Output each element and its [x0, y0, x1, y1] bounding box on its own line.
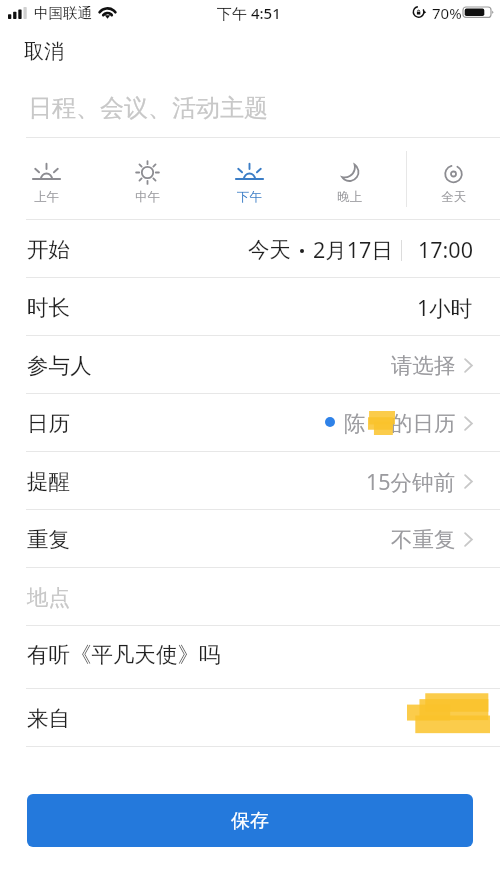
staticText: 下午 4:51 — [217, 3, 281, 23]
staticText: 晚上 — [337, 189, 362, 205]
staticText: 保存 — [231, 809, 269, 833]
staticText: 不重复 — [391, 526, 456, 553]
staticText: 陈 — [344, 410, 366, 437]
button[interactable]: 日历 — [0, 394, 500, 452]
staticText: 中国联通 — [34, 4, 92, 22]
button[interactable]: 中午 — [97, 138, 197, 220]
staticText: 参与人 — [27, 352, 92, 379]
button[interactable]: 地点 — [0, 568, 500, 626]
staticText: 日程、会议、活动主题 — [28, 93, 268, 123]
button[interactable]: 晚上 — [299, 138, 399, 220]
button[interactable]: 来自 — [0, 689, 500, 747]
button[interactable]: 下午 — [199, 138, 299, 220]
button[interactable]: 有听《平凡天使》吗 — [0, 626, 500, 689]
button[interactable]: 全天 — [403, 138, 500, 220]
button[interactable]: 日程、会议、活动主题 — [0, 75, 500, 137]
staticText: 开始 — [27, 236, 70, 263]
staticText: 时长 — [27, 294, 70, 321]
staticText: 重复 — [27, 526, 70, 553]
staticText: 提醒 — [27, 468, 70, 495]
staticText: 17:00 — [418, 235, 473, 264]
staticText: 下午 — [237, 189, 262, 205]
staticText: 日历 — [27, 410, 70, 437]
staticText: 2月17日 — [313, 235, 393, 264]
button[interactable]: 提醒 — [0, 452, 500, 510]
staticText: 中午 — [135, 189, 160, 205]
staticText: 的日历 — [391, 410, 456, 437]
button[interactable]: 保存 — [27, 794, 473, 847]
button[interactable]: 取消 — [24, 39, 64, 64]
staticText: 有听《平凡天使》吗 — [27, 641, 221, 668]
button[interactable]: 时长 — [0, 278, 500, 336]
staticText: 今天 — [248, 236, 291, 263]
staticText: 来自 — [27, 705, 70, 732]
staticText: 请选择 — [391, 352, 456, 379]
staticText: 1小时 — [417, 293, 473, 322]
staticText: 70% — [432, 3, 462, 23]
staticText: 取消 — [24, 39, 64, 64]
button[interactable]: 重复 — [0, 510, 500, 568]
staticText: 全天 — [441, 189, 466, 205]
staticText: 15分钟前 — [366, 467, 456, 496]
button[interactable]: 开始 — [0, 220, 500, 278]
staticText: 地点 — [27, 584, 70, 611]
button[interactable]: 上午 — [0, 138, 96, 220]
button[interactable]: 参与人 — [0, 336, 500, 394]
staticText: 上午 — [34, 189, 59, 205]
